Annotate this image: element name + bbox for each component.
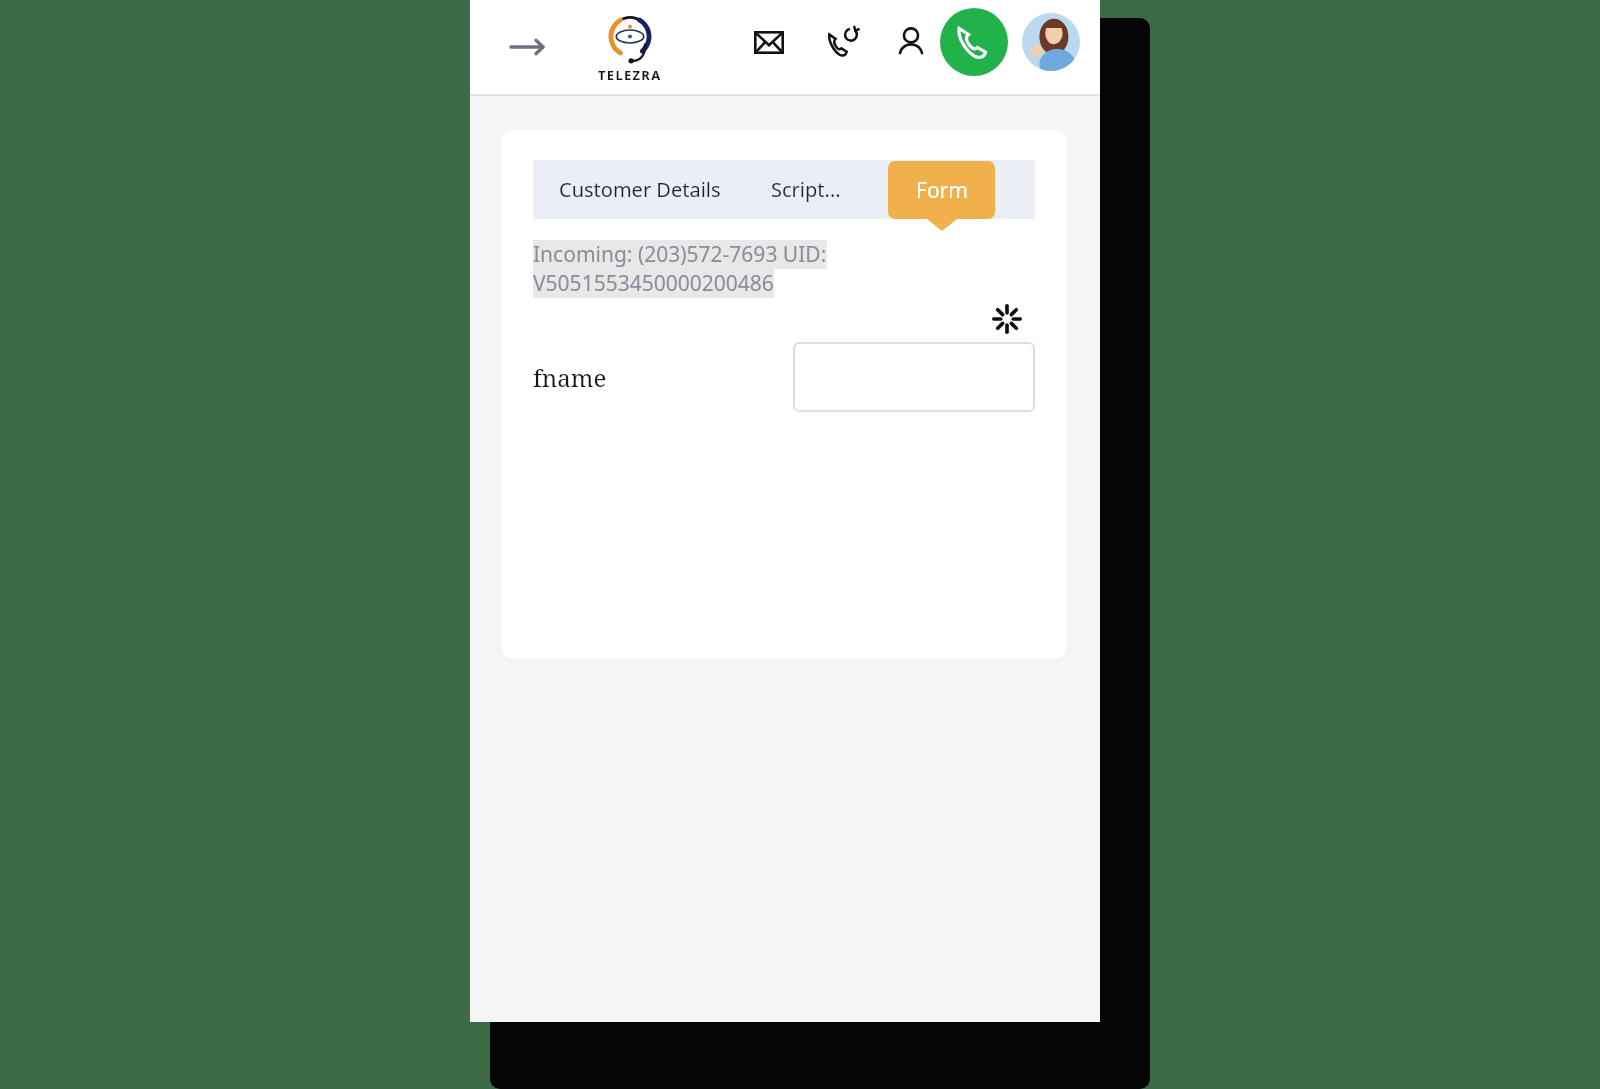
button[interactable]: Form	[888, 161, 995, 231]
staticText: TELEZRA	[598, 66, 662, 84]
button[interactable]: Script...	[747, 160, 865, 219]
button[interactable]: Call	[940, 8, 1008, 76]
button[interactable]: Messages	[742, 15, 796, 69]
staticText: Script...	[771, 176, 841, 203]
button[interactable]: Contacts	[884, 15, 938, 69]
button[interactable]: Forward	[498, 18, 556, 76]
button[interactable]: Callback	[816, 15, 870, 69]
staticText: Incoming: (203)572-7693 UID:	[533, 240, 827, 269]
button[interactable]: Telezra home	[598, 14, 662, 84]
staticText: Form	[916, 176, 968, 205]
button[interactable]: Customer Details	[533, 160, 747, 219]
button[interactable]: Profile	[1022, 13, 1080, 71]
staticText: Customer Details	[559, 176, 721, 203]
staticText: V5051553450000200486	[533, 269, 774, 298]
staticText: fname	[533, 361, 607, 394]
button[interactable]: fname input	[793, 342, 1035, 412]
